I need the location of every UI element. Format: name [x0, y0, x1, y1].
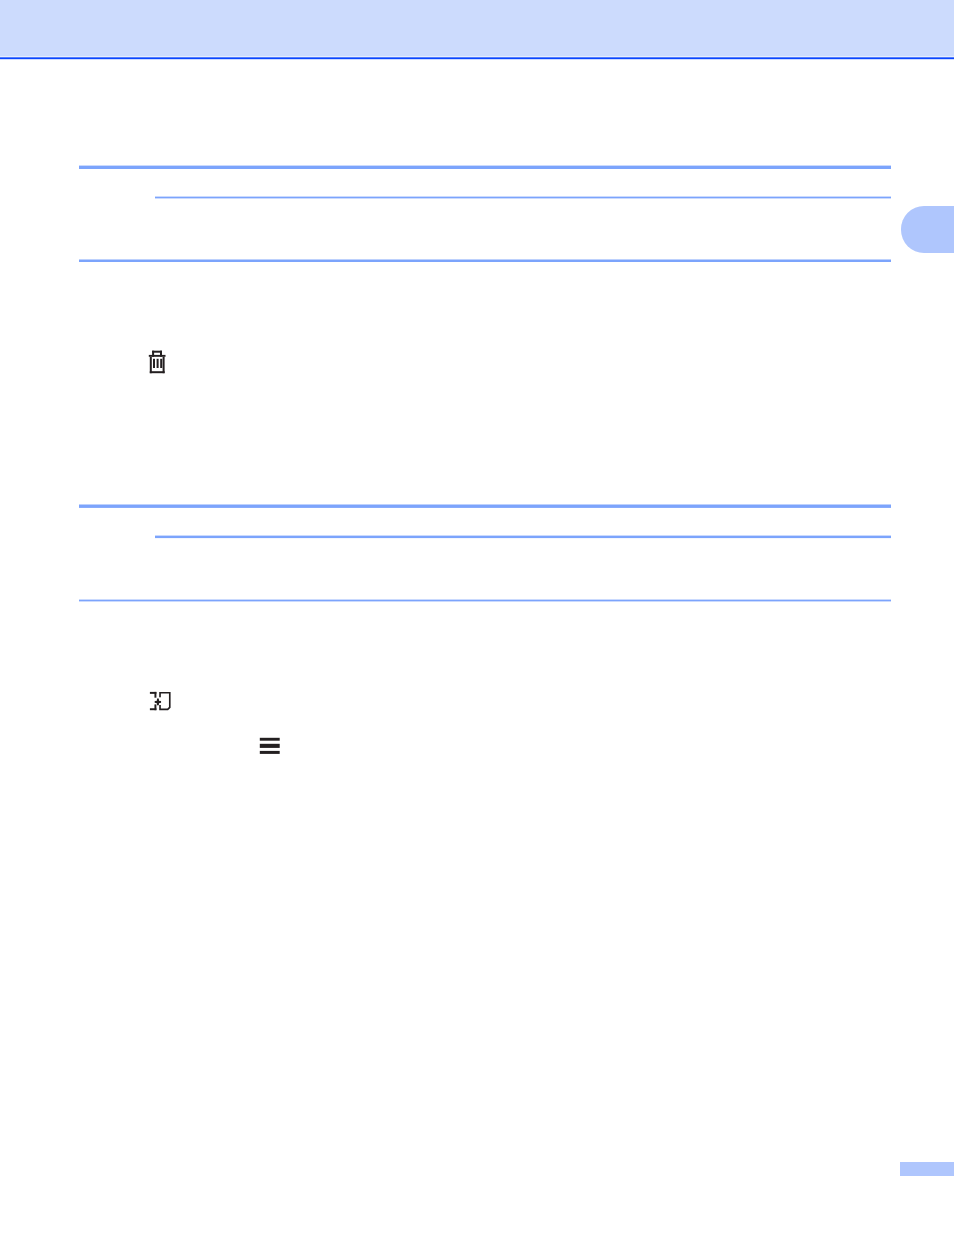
button[interactable]: Delete	[141, 343, 173, 381]
button[interactable]: Section header	[0, 0, 954, 60]
button[interactable]: Scan to document	[143, 685, 177, 717]
button[interactable]: Chapter tab	[901, 206, 954, 253]
button[interactable]: Menu	[253, 730, 287, 761]
